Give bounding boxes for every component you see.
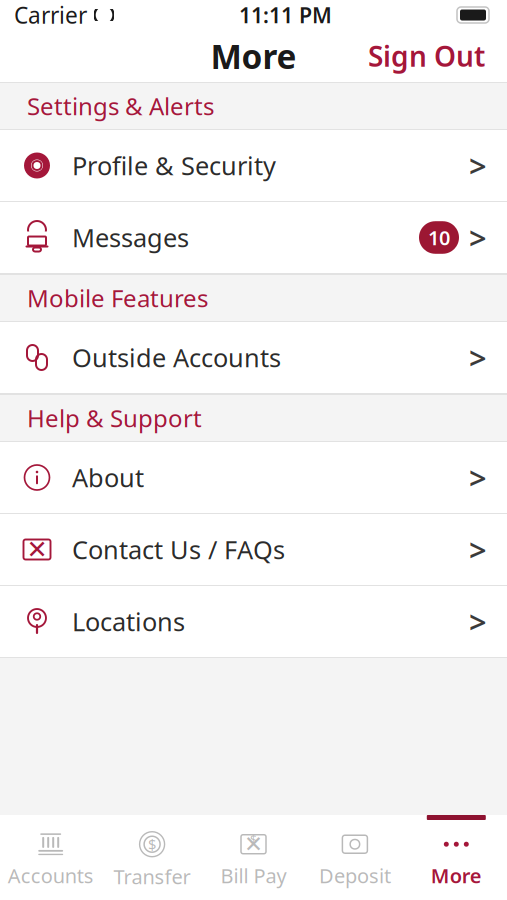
staticText: Sign Out [368,37,485,75]
button[interactable]: Outside Accounts [0,322,507,394]
button[interactable]: ✕ [203,815,304,900]
staticText: Deposit [319,862,391,889]
staticText: ✕ [26,535,47,564]
staticText: Transfer [114,863,191,890]
staticText: Bill Pay [220,862,286,889]
staticText: > [469,457,487,498]
staticText: > [469,529,487,570]
staticText: Help & Support [27,402,202,434]
staticText: 10 [428,224,450,251]
staticText: Settings & Alerts [27,90,214,122]
button[interactable]: Locations [0,586,507,658]
staticText: > [469,337,487,378]
button[interactable]: ✕ [0,514,507,586]
staticText: $ [148,834,156,854]
staticText: More [431,862,482,889]
staticText: Accounts [8,862,94,889]
staticText: > [469,145,487,186]
button[interactable]: More [406,815,507,900]
staticText: 11:11 PM [239,1,332,29]
button[interactable]: $ [101,815,203,900]
staticText: More [210,34,296,78]
button[interactable]: Messages [0,202,507,274]
staticText: Mobile Features [27,282,208,314]
staticText: Contact Us / FAQs [72,533,285,566]
staticText: Outside Accounts [72,341,281,374]
staticText: > [469,217,487,258]
staticText: $ [250,832,257,848]
staticText: Locations [72,605,185,638]
button[interactable]: Sign Out [356,29,497,83]
staticText: Messages [72,221,189,254]
staticText: Profile & Security [72,149,276,182]
button[interactable]: About [0,442,507,514]
button[interactable]: Deposit [304,815,406,900]
staticText: Carrier [14,0,87,30]
button[interactable]: Accounts [0,815,101,900]
button[interactable]: Profile & Security [0,130,507,202]
staticText: About [72,461,144,494]
staticText: ✕ [244,831,263,857]
staticText: > [469,601,487,642]
